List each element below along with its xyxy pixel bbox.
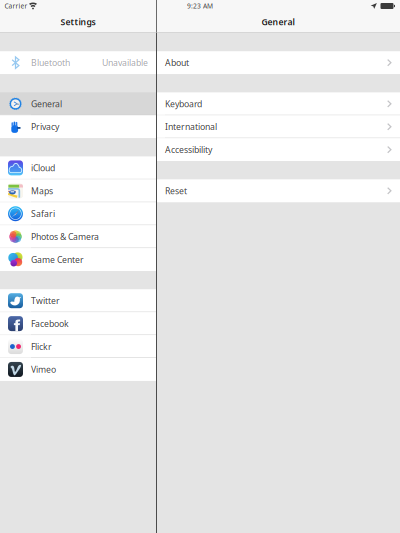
staticText: Twitter bbox=[31, 295, 60, 307]
staticText: Photos & Camera bbox=[31, 231, 99, 242]
staticText: General bbox=[31, 98, 62, 110]
button[interactable]: Reset bbox=[157, 179, 400, 202]
button[interactable]: Game Center bbox=[0, 248, 156, 271]
staticText: Carrier bbox=[4, 1, 27, 11]
staticText: Reset bbox=[165, 185, 187, 197]
button[interactable]: Twitter bbox=[0, 289, 156, 312]
staticText: International bbox=[165, 121, 217, 133]
button[interactable]: Photos & Camera bbox=[0, 225, 156, 248]
staticText: Privacy bbox=[31, 121, 59, 133]
staticText: Flickr bbox=[31, 341, 52, 352]
staticText: Safari bbox=[31, 208, 55, 220]
button[interactable]: Maps bbox=[0, 179, 156, 202]
staticText: Settings bbox=[60, 16, 95, 28]
staticText: About bbox=[165, 57, 189, 69]
button[interactable]: Bluetooth bbox=[0, 51, 156, 74]
staticText: 9:23 AM bbox=[187, 1, 213, 11]
button[interactable]: About bbox=[157, 51, 400, 74]
staticText: Keyboard bbox=[165, 98, 202, 110]
staticText: Bluetooth bbox=[31, 57, 70, 69]
button[interactable]: iCloud bbox=[0, 156, 156, 179]
button[interactable]: Privacy bbox=[0, 115, 156, 138]
button[interactable]: Accessibility bbox=[157, 138, 400, 161]
button[interactable]: International bbox=[157, 115, 400, 138]
staticText: Accessibility bbox=[165, 144, 212, 156]
button[interactable]: General bbox=[0, 92, 156, 115]
button[interactable]: General bbox=[156, 11, 400, 32]
button[interactable]: Vimeo bbox=[0, 358, 156, 381]
button[interactable]: Facebook bbox=[0, 312, 156, 335]
staticText: Facebook bbox=[31, 318, 69, 329]
button[interactable]: Settings bbox=[0, 11, 156, 32]
staticText: Maps bbox=[31, 185, 53, 197]
staticText: Game Center bbox=[31, 254, 84, 265]
staticText: Vimeo bbox=[31, 364, 56, 375]
staticText: Unavailable bbox=[102, 57, 148, 69]
button[interactable]: Flickr bbox=[0, 335, 156, 358]
button[interactable]: Keyboard bbox=[157, 92, 400, 115]
staticText: iCloud bbox=[31, 162, 55, 174]
staticText: General bbox=[261, 16, 294, 28]
button[interactable]: Safari bbox=[0, 202, 156, 225]
